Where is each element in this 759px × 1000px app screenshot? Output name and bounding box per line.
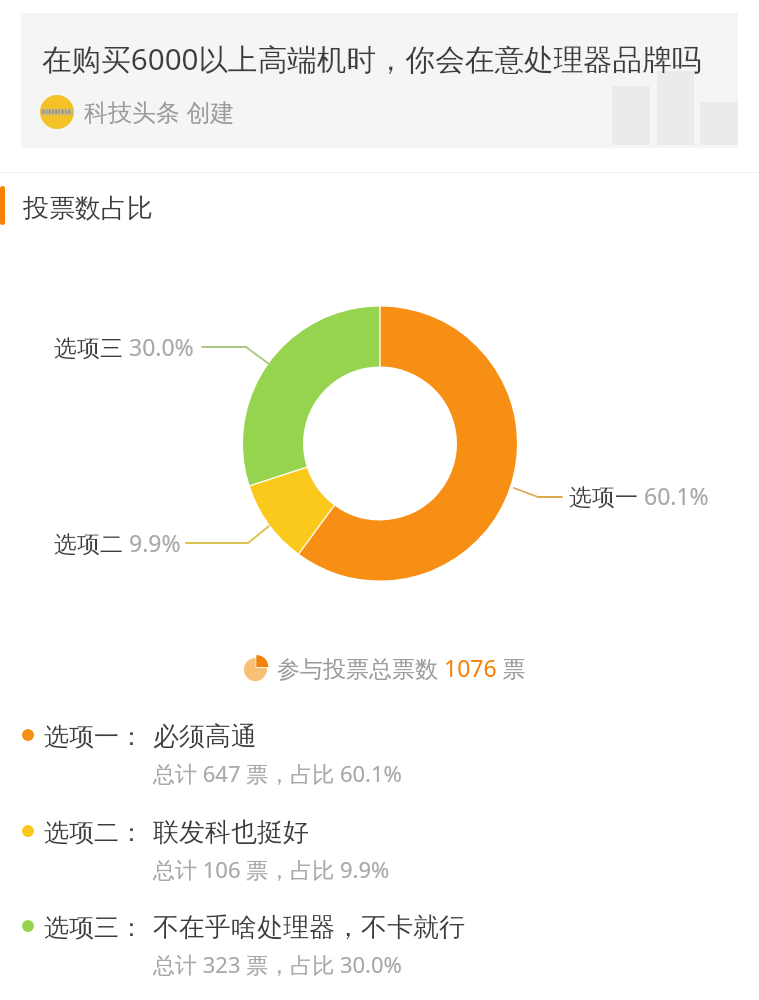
staticText: 选项二 9.9%: [54, 527, 181, 558]
staticText: 必须高通: [153, 720, 257, 753]
staticText: 选项二：: [44, 817, 144, 848]
staticText: 选项一：: [44, 721, 144, 752]
button[interactable]: 选项一：: [0, 705, 759, 795]
button[interactable]: 在购买6000以上高端机时，你会在意处理器品牌吗: [21, 13, 738, 148]
staticText: 选项一 60.1%: [569, 480, 709, 511]
other: 投票结果环形图: [0, 250, 759, 640]
staticText: 参与投票总票数 1076 票: [277, 652, 526, 683]
other: 科技头条 头像: [40, 95, 74, 129]
button[interactable]: 选项二：: [0, 801, 759, 891]
staticText: 不在乎啥处理器，不卡就行: [153, 911, 465, 944]
staticText: 科技头条 创建: [84, 95, 235, 128]
staticText: 总计 106 票，占比 9.9%: [153, 854, 390, 884]
staticText: 选项三 30.0%: [54, 331, 194, 362]
staticText: 选项三：: [44, 912, 144, 943]
staticText: 总计 323 票，占比 30.0%: [153, 949, 402, 979]
staticText: 总计 647 票，占比 60.1%: [153, 758, 402, 788]
staticText: 联发科也挺好: [153, 816, 309, 849]
staticText: 在购买6000以上高端机时，你会在意处理器品牌吗: [42, 38, 702, 78]
staticText: 投票数占比: [23, 192, 153, 225]
button[interactable]: 选项三：: [0, 896, 759, 986]
